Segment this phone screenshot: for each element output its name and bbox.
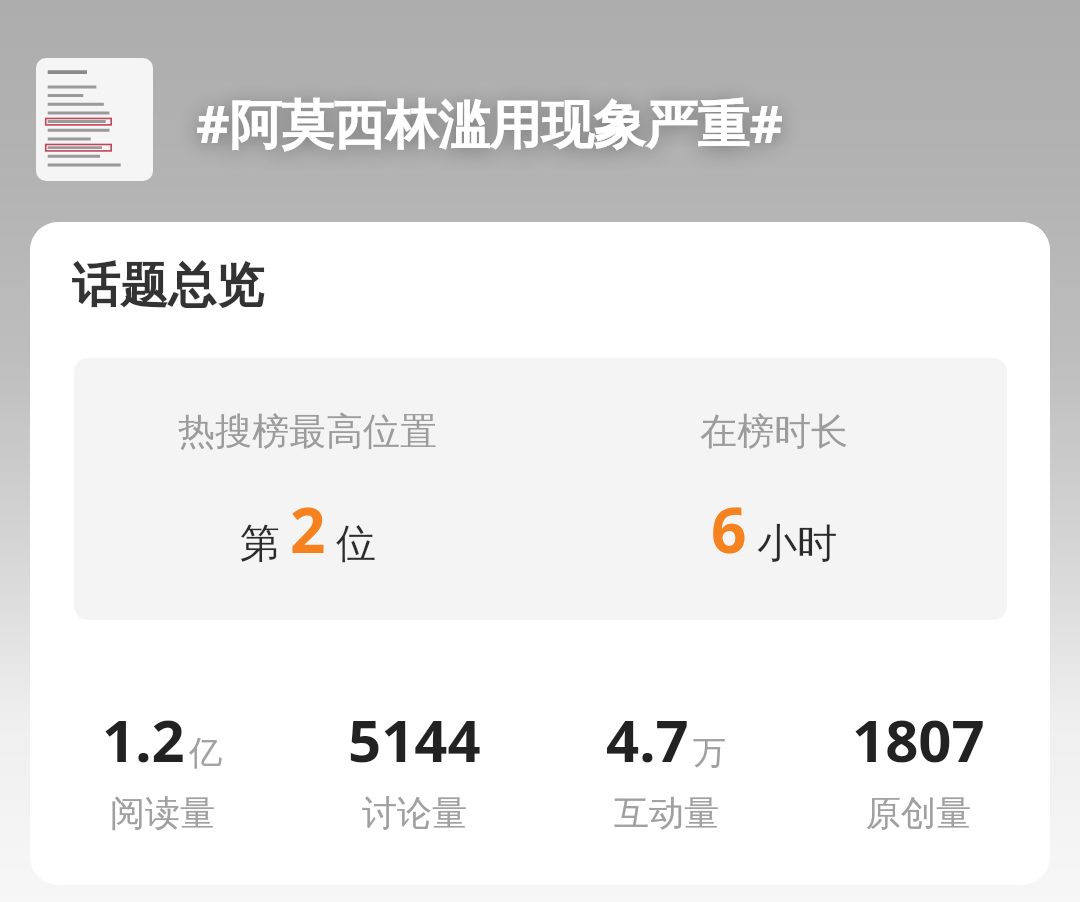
staticText: 第 [240, 518, 280, 568]
staticText: 1.2 [102, 700, 185, 779]
button[interactable]: 5144 [294, 700, 534, 835]
staticText: 阅读量 [110, 791, 215, 835]
staticText: 热搜榜最高位置 [178, 408, 437, 455]
staticText: 亿 [189, 732, 222, 774]
staticText: 在榜时长 [700, 408, 848, 455]
staticText: 万 [693, 732, 726, 774]
staticText: 小时 [757, 518, 837, 568]
button[interactable]: Topic preview thumbnail [36, 58, 153, 181]
staticText: 原创量 [866, 791, 971, 835]
button[interactable]: 热搜榜最高位置 [74, 358, 540, 620]
staticText: #阿莫西林滥用现象严重# [196, 87, 784, 158]
staticText: 位 [336, 518, 376, 568]
staticText: 6 [711, 487, 747, 571]
staticText: 互动量 [614, 791, 719, 835]
staticText: 讨论量 [362, 791, 467, 835]
staticText: 1807 [852, 700, 985, 779]
button[interactable]: 4.7 [546, 700, 786, 835]
button[interactable]: 1807 [798, 700, 1038, 835]
staticText: 话题总览 [72, 256, 264, 316]
button[interactable]: 1.2 [42, 700, 282, 835]
staticText: 5144 [348, 700, 481, 779]
button[interactable]: 在榜时长 [540, 358, 1007, 620]
button[interactable]: 话题总览 [72, 256, 264, 316]
staticText: 4.7 [606, 700, 689, 779]
staticText: 2 [290, 487, 326, 571]
